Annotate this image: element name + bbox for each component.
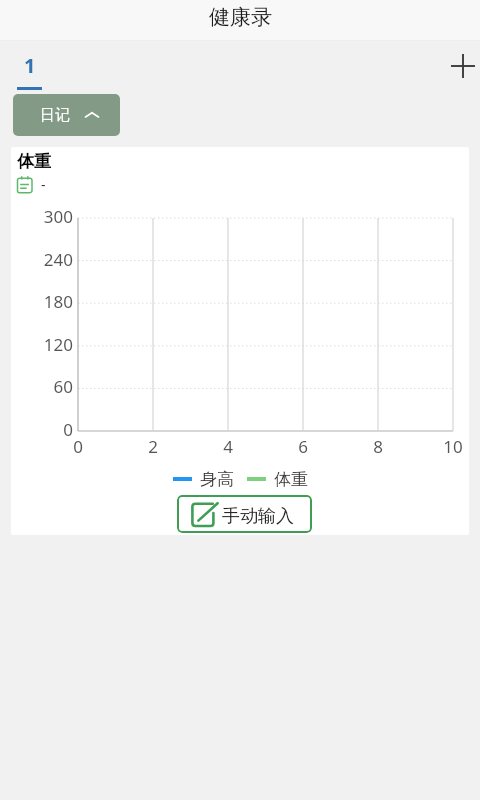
staticText: - [41, 175, 46, 194]
staticText: 0 [58, 435, 98, 458]
staticText: 身高 [200, 469, 234, 489]
staticText: 10 [433, 435, 469, 458]
staticText: 60 [11, 375, 73, 398]
staticText: 240 [11, 248, 73, 271]
staticText: 180 [11, 290, 73, 313]
staticText: 120 [11, 333, 73, 356]
staticText: 体重 [274, 469, 308, 489]
staticText: 健康录 [209, 4, 272, 30]
staticText: 手动输入 [222, 505, 294, 528]
staticText: 4 [208, 435, 248, 458]
button[interactable]: 手动输入 [177, 495, 312, 533]
staticText: 2 [133, 435, 173, 458]
staticText: 0 [11, 418, 73, 441]
staticText: 1 [24, 52, 36, 79]
staticText: 300 [11, 205, 73, 228]
staticText: 日记 [40, 106, 70, 125]
staticText: 体重 [17, 151, 51, 172]
staticText: 8 [358, 435, 398, 458]
button[interactable]: Add [440, 43, 480, 89]
staticText: 6 [283, 435, 323, 458]
button[interactable]: 日记 [13, 94, 120, 136]
button[interactable]: 1 [17, 51, 42, 90]
